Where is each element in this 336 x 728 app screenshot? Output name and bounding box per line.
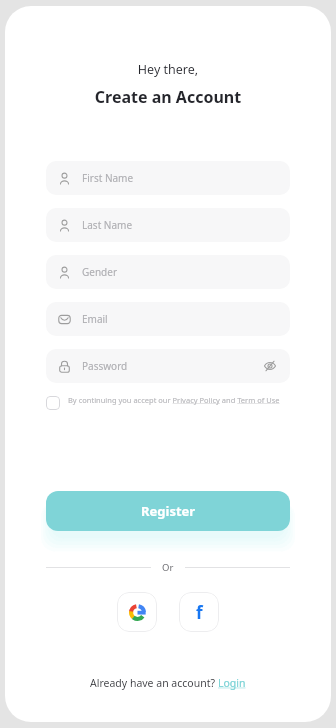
staticText: Email [82,312,278,326]
staticText: f [196,601,203,624]
button[interactable]: Password [46,349,290,383]
button[interactable]: Register [46,491,290,531]
staticText: Already have an account? [90,676,218,690]
button[interactable]: First Name [46,161,290,195]
button[interactable]: Sign up with Google [117,592,157,632]
staticText: Last Name [82,218,278,232]
button[interactable]: Last Name [46,208,290,242]
button[interactable]: Show password [262,358,278,374]
staticText: Create an Account [5,86,331,108]
button[interactable]: Email [46,302,290,336]
staticText: Or [162,561,174,574]
staticText: Gender [82,265,278,279]
button[interactable]: By continuing you accept our Privacy Pol… [46,395,290,410]
staticText: Login [218,676,246,690]
staticText: First Name [82,171,278,185]
staticText: Hey there, [5,61,331,78]
staticText: Password [82,359,262,373]
button[interactable]: Login [218,676,246,690]
button[interactable]: Gender [46,255,290,289]
staticText: By continuing you accept our Privacy Pol… [68,395,280,405]
staticText: Register [141,502,196,520]
button[interactable]: Sign up with Facebook [179,592,219,632]
